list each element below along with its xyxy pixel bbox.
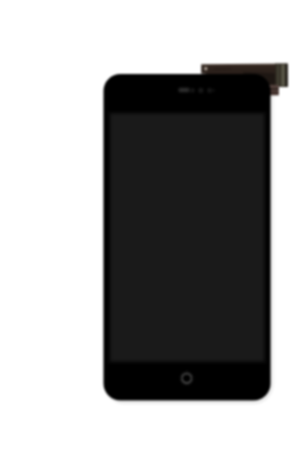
other: Phone LCD display and touch digitizer as… (0, 0, 293, 467)
